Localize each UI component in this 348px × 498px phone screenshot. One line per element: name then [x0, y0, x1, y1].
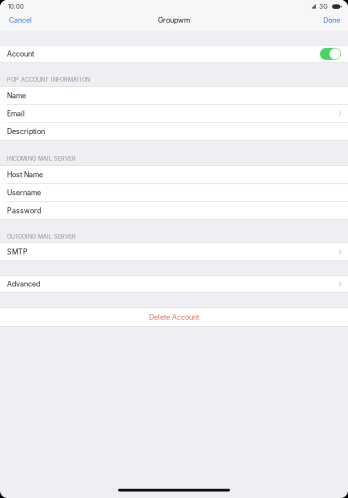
staticText: Host Name — [7, 170, 43, 179]
button[interactable]: Username — [0, 184, 348, 201]
staticText: Account — [7, 50, 34, 58]
staticText: 10:00 — [8, 3, 24, 10]
button[interactable]: Cancel — [0, 13, 37, 27]
staticText: Description — [7, 127, 45, 136]
staticText: SMTP — [7, 248, 28, 256]
button[interactable]: Password — [0, 202, 348, 219]
staticText: Email — [7, 109, 25, 118]
button[interactable]: Account enabled — [320, 48, 341, 60]
button[interactable]: SMTP — [0, 243, 348, 260]
button[interactable]: Host Name — [0, 166, 348, 183]
button[interactable]: Delete Account — [0, 308, 348, 326]
staticText: Name — [7, 91, 26, 100]
staticText: INCOMING MAIL SERVER — [7, 155, 76, 162]
button[interactable]: Email — [0, 105, 348, 122]
staticText: Groupwm — [158, 16, 190, 24]
staticText: OUTGOING MAIL SERVER — [7, 233, 76, 240]
staticText: Advanced — [7, 280, 40, 288]
staticText: Delete Account — [149, 313, 199, 321]
staticText: Username — [7, 188, 41, 197]
button[interactable]: Done — [318, 13, 348, 27]
staticText: POP ACCOUNT INFORMATION — [7, 76, 90, 83]
staticText: Done — [323, 16, 340, 24]
button[interactable]: Name — [0, 87, 348, 104]
button[interactable]: Advanced — [0, 276, 348, 292]
staticText: Password — [7, 206, 41, 215]
button[interactable]: Description — [0, 123, 348, 140]
staticText: 3G — [319, 3, 327, 10]
staticText: Cancel — [9, 16, 32, 24]
